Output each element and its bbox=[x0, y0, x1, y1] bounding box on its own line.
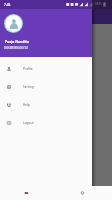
button[interactable]: Back bbox=[21, 189, 32, 197]
staticText: Setting bbox=[23, 85, 34, 89]
staticText: 55% bbox=[95, 2, 102, 6]
button[interactable]: Help bbox=[0, 96, 92, 114]
button[interactable]: Setting bbox=[0, 78, 92, 96]
button[interactable]: Profile bbox=[0, 60, 92, 78]
staticText: Profile bbox=[23, 67, 33, 71]
staticText: Pooja Nandita bbox=[5, 39, 29, 44]
button[interactable]: Home bbox=[78, 189, 88, 197]
staticText: Help bbox=[23, 103, 30, 107]
staticText: 8858890646741 bbox=[4, 45, 29, 49]
staticText: 7:45 bbox=[4, 3, 11, 7]
button[interactable]: Logout bbox=[0, 114, 92, 132]
staticText: Logout bbox=[23, 121, 34, 125]
